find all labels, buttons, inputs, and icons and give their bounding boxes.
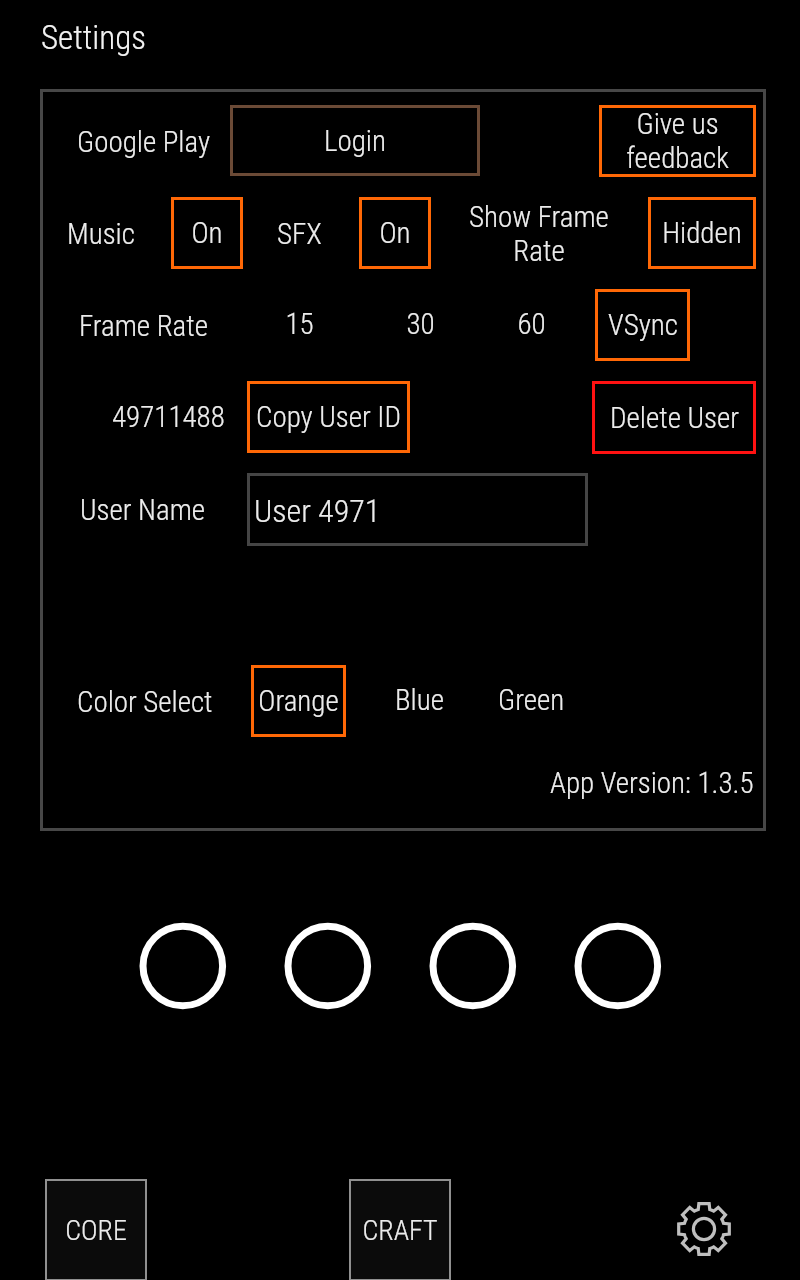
button[interactable]: Hidden — [648, 197, 756, 269]
button[interactable]: CRAFT — [349, 1179, 451, 1280]
staticText: Show Frame Rate — [469, 200, 609, 268]
button[interactable]: CORE — [45, 1179, 147, 1280]
button[interactable]: Delete User — [592, 381, 756, 454]
staticText: CORE — [65, 1214, 127, 1247]
staticText: CRAFT — [362, 1214, 438, 1247]
button[interactable]: Give us feedback — [599, 105, 756, 177]
button[interactable]: Settings — [674, 1199, 734, 1259]
staticText: Orange — [258, 684, 339, 718]
staticText: User 4971 — [254, 492, 381, 530]
staticText: 60 — [517, 307, 546, 341]
button[interactable]: Orange — [251, 665, 346, 737]
staticText: Frame Rate — [79, 309, 208, 343]
staticText: On — [191, 216, 223, 250]
button[interactable]: Login — [230, 105, 480, 176]
staticText: Blue — [395, 683, 444, 717]
button[interactable]: VSync — [595, 289, 690, 361]
staticText: Login — [324, 124, 386, 158]
staticText: User Name — [80, 493, 206, 527]
staticText: Color Select — [77, 685, 213, 719]
staticText: VSync — [608, 308, 678, 342]
staticText: Settings — [41, 18, 147, 57]
button[interactable]: Copy User ID — [247, 381, 410, 453]
staticText: Google Play — [77, 125, 211, 159]
staticText: Give us feedback — [626, 107, 729, 175]
staticText: On — [379, 216, 411, 250]
button[interactable]: User 4971 — [247, 473, 588, 546]
staticText: Delete User — [610, 401, 739, 435]
staticText: App Version: 1.3.5 — [550, 766, 754, 800]
staticText: 15 — [285, 307, 314, 341]
staticText: 30 — [406, 307, 435, 341]
staticText: 49711488 — [112, 400, 225, 434]
staticText: SFX — [277, 217, 322, 251]
button[interactable]: On — [359, 197, 431, 269]
staticText: Music — [67, 217, 135, 251]
staticText: Hidden — [662, 216, 742, 250]
staticText: Green — [498, 683, 565, 717]
button[interactable]: On — [171, 197, 243, 269]
staticText: Copy User ID — [256, 400, 401, 434]
